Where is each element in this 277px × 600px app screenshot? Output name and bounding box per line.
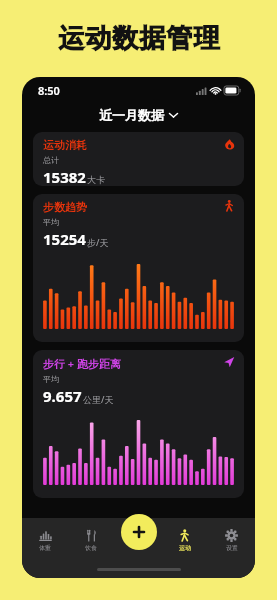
staticText: 步行 + 跑步距离 (43, 356, 122, 371)
staticText: 体重 (39, 544, 51, 552)
staticText: 运动 (179, 544, 191, 552)
staticText: 15254 (43, 229, 86, 249)
staticText: 公里/天 (83, 393, 114, 405)
button[interactable]: Add (121, 514, 157, 550)
staticText: 平均 (43, 217, 59, 227)
staticText: 步/天 (87, 236, 109, 248)
button[interactable]: 近一月数据 (22, 103, 255, 127)
staticText: 饮食 (85, 544, 97, 552)
staticText: 运动消耗 (43, 138, 87, 152)
staticText: 近一月数据 (99, 107, 164, 123)
button[interactable]: 体重 (22, 529, 68, 552)
button[interactable]: 运动消耗 (33, 132, 244, 186)
staticText: 9.657 (43, 386, 82, 406)
staticText: 步数趋势 (43, 200, 87, 214)
staticText: 8:50 (38, 83, 60, 98)
staticText: 平均 (43, 374, 59, 384)
staticText: 总计 (43, 155, 59, 165)
staticText: 运动数据管理 (58, 22, 220, 55)
staticText: 15382 (43, 167, 86, 186)
button[interactable]: 运动 (161, 529, 208, 552)
button[interactable]: 步行 + 跑步距离 (33, 350, 244, 498)
button[interactable]: 步数趋势 (33, 194, 244, 342)
staticText: 设置 (226, 544, 238, 552)
button[interactable]: 设置 (208, 529, 255, 552)
button[interactable]: 饮食 (68, 529, 114, 552)
staticText: 大卡 (87, 174, 105, 185)
